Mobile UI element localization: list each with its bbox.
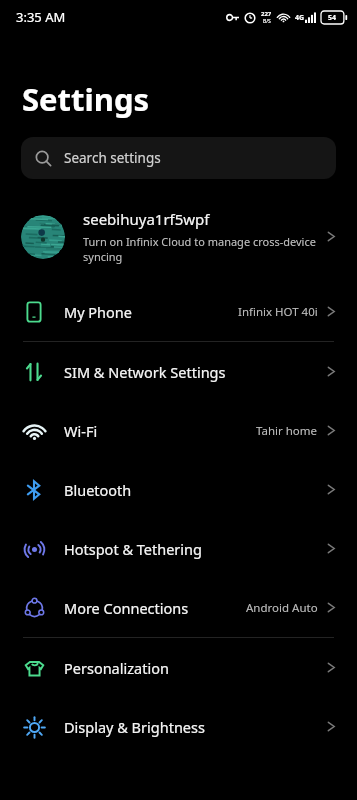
staticText: B/S (263, 18, 271, 25)
staticText: 3:35 AM (16, 8, 66, 26)
staticText: Turn on Infinix Cloud to manage cross-de… (83, 234, 319, 264)
button[interactable]: Bluetooth (0, 460, 357, 519)
staticText: 54 (328, 13, 337, 23)
staticText: Tahir home (256, 423, 318, 439)
staticText: Display & Brightness (64, 717, 205, 737)
staticText: Settings (22, 78, 150, 120)
button[interactable]: SIM & Network Settings (0, 342, 357, 401)
staticText: Hotspot & Tethering (64, 539, 202, 559)
staticText: Wi-Fi (64, 421, 98, 441)
button[interactable]: seebihuya1rf5wpf (0, 201, 357, 272)
staticText: 4G (295, 13, 305, 23)
staticText: 227 (261, 10, 272, 18)
staticText: Personalization (64, 658, 169, 678)
button[interactable]: My Phone (0, 282, 357, 341)
staticText: seebihuya1rf5wpf (83, 209, 210, 229)
button[interactable]: Wi-Fi (0, 401, 357, 460)
staticText: Infinix HOT 40i (238, 304, 318, 320)
staticText: My Phone (64, 302, 132, 322)
staticText: SIM & Network Settings (64, 362, 226, 382)
button[interactable]: Personalization (0, 638, 357, 697)
staticText: More Connections (64, 598, 189, 618)
staticText: Bluetooth (64, 480, 132, 500)
button[interactable]: More Connections (0, 578, 357, 637)
button[interactable]: Hotspot & Tethering (0, 519, 357, 578)
button[interactable]: Display & Brightness (0, 697, 357, 756)
button[interactable]: Search settings (21, 137, 336, 179)
staticText: Android Auto (246, 600, 318, 616)
staticText: Search settings (64, 149, 161, 167)
